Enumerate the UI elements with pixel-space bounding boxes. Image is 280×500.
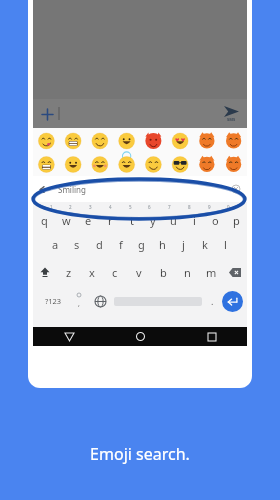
staticText: q bbox=[41, 213, 48, 228]
button[interactable]: q bbox=[33, 213, 55, 228]
button[interactable]: z bbox=[57, 258, 80, 286]
staticText: 0 bbox=[227, 204, 230, 210]
staticText: n bbox=[184, 265, 191, 280]
staticText: 5 bbox=[129, 204, 132, 210]
staticText: f bbox=[119, 237, 123, 252]
staticText: z bbox=[66, 265, 72, 280]
button[interactable]: Enter bbox=[222, 291, 243, 312]
staticText: 6 bbox=[148, 204, 151, 210]
staticText: , bbox=[78, 299, 80, 309]
staticText: Emoji search. bbox=[0, 443, 280, 465]
button[interactable]: v bbox=[127, 258, 151, 286]
staticText: a bbox=[52, 237, 59, 252]
button[interactable]: Send SMS bbox=[222, 106, 241, 122]
button[interactable]: d bbox=[88, 230, 110, 258]
staticText: i bbox=[193, 213, 196, 228]
staticText: SMS bbox=[227, 117, 236, 122]
staticText: c bbox=[112, 265, 118, 280]
button[interactable]: Home bbox=[105, 327, 176, 346]
button[interactable]: h bbox=[152, 230, 173, 258]
staticText: t bbox=[130, 213, 134, 228]
other: Back bbox=[39, 184, 50, 195]
staticText: 8 bbox=[188, 204, 191, 210]
button[interactable]: u bbox=[163, 213, 184, 228]
staticText: 7 bbox=[168, 204, 171, 210]
button[interactable]: l bbox=[215, 230, 236, 258]
staticText: m bbox=[206, 265, 217, 280]
staticText: 1 bbox=[50, 204, 53, 210]
staticText: e bbox=[85, 213, 92, 228]
button[interactable]: Backspace bbox=[223, 258, 247, 286]
button[interactable]: Shift bbox=[33, 258, 57, 286]
staticText: . bbox=[211, 295, 214, 307]
button[interactable]: g bbox=[131, 230, 152, 258]
staticText: 9 bbox=[208, 204, 211, 210]
button[interactable]: Back bbox=[33, 176, 247, 202]
button[interactable]: Back bbox=[33, 327, 105, 346]
staticText: b bbox=[160, 265, 167, 280]
staticText: g bbox=[138, 237, 145, 252]
staticText: 2 bbox=[69, 204, 72, 210]
staticText: l bbox=[224, 237, 227, 252]
staticText: ?123 bbox=[45, 296, 62, 306]
staticText: 4 bbox=[109, 204, 112, 210]
staticText: x bbox=[89, 265, 95, 280]
staticText: d bbox=[96, 237, 103, 252]
staticText: y bbox=[150, 213, 156, 228]
button[interactable]: x bbox=[80, 258, 103, 286]
button[interactable]: i bbox=[184, 213, 205, 228]
button[interactable]: b bbox=[151, 258, 175, 286]
button[interactable]: ?123 bbox=[37, 286, 69, 316]
staticText: w bbox=[62, 213, 71, 228]
staticText: o bbox=[212, 213, 219, 228]
button[interactable]: a bbox=[44, 230, 66, 258]
staticText: s bbox=[74, 237, 80, 252]
button[interactable]: e bbox=[77, 213, 99, 228]
button[interactable]: s bbox=[66, 230, 88, 258]
button[interactable]: j bbox=[173, 230, 194, 258]
button[interactable]: t bbox=[121, 213, 142, 228]
button[interactable]: n bbox=[175, 258, 199, 286]
button[interactable]: c bbox=[103, 258, 127, 286]
button[interactable]: Add attachment bbox=[39, 106, 55, 122]
button[interactable]: Recents bbox=[176, 327, 247, 346]
button[interactable]: Comma bbox=[69, 286, 89, 316]
button[interactable]: k bbox=[194, 230, 215, 258]
staticText: Smiling bbox=[58, 184, 86, 195]
staticText: h bbox=[159, 237, 166, 252]
button[interactable]: y bbox=[142, 213, 163, 228]
button[interactable]: f bbox=[110, 230, 131, 258]
staticText: k bbox=[202, 237, 208, 252]
staticText: p bbox=[233, 213, 240, 228]
staticText: r bbox=[108, 213, 113, 228]
staticText: j bbox=[182, 237, 185, 252]
button[interactable]: r bbox=[99, 213, 121, 228]
button[interactable]: m bbox=[199, 258, 223, 286]
button[interactable]: Change language bbox=[89, 286, 111, 316]
button[interactable]: Clear bbox=[232, 185, 240, 193]
button[interactable]: o bbox=[205, 213, 226, 228]
button[interactable]: w bbox=[55, 213, 77, 228]
staticText: u bbox=[170, 213, 177, 228]
staticText: 3 bbox=[89, 204, 92, 210]
button[interactable]: p bbox=[226, 213, 247, 228]
button[interactable]: . bbox=[202, 286, 222, 316]
staticText: v bbox=[136, 265, 142, 280]
